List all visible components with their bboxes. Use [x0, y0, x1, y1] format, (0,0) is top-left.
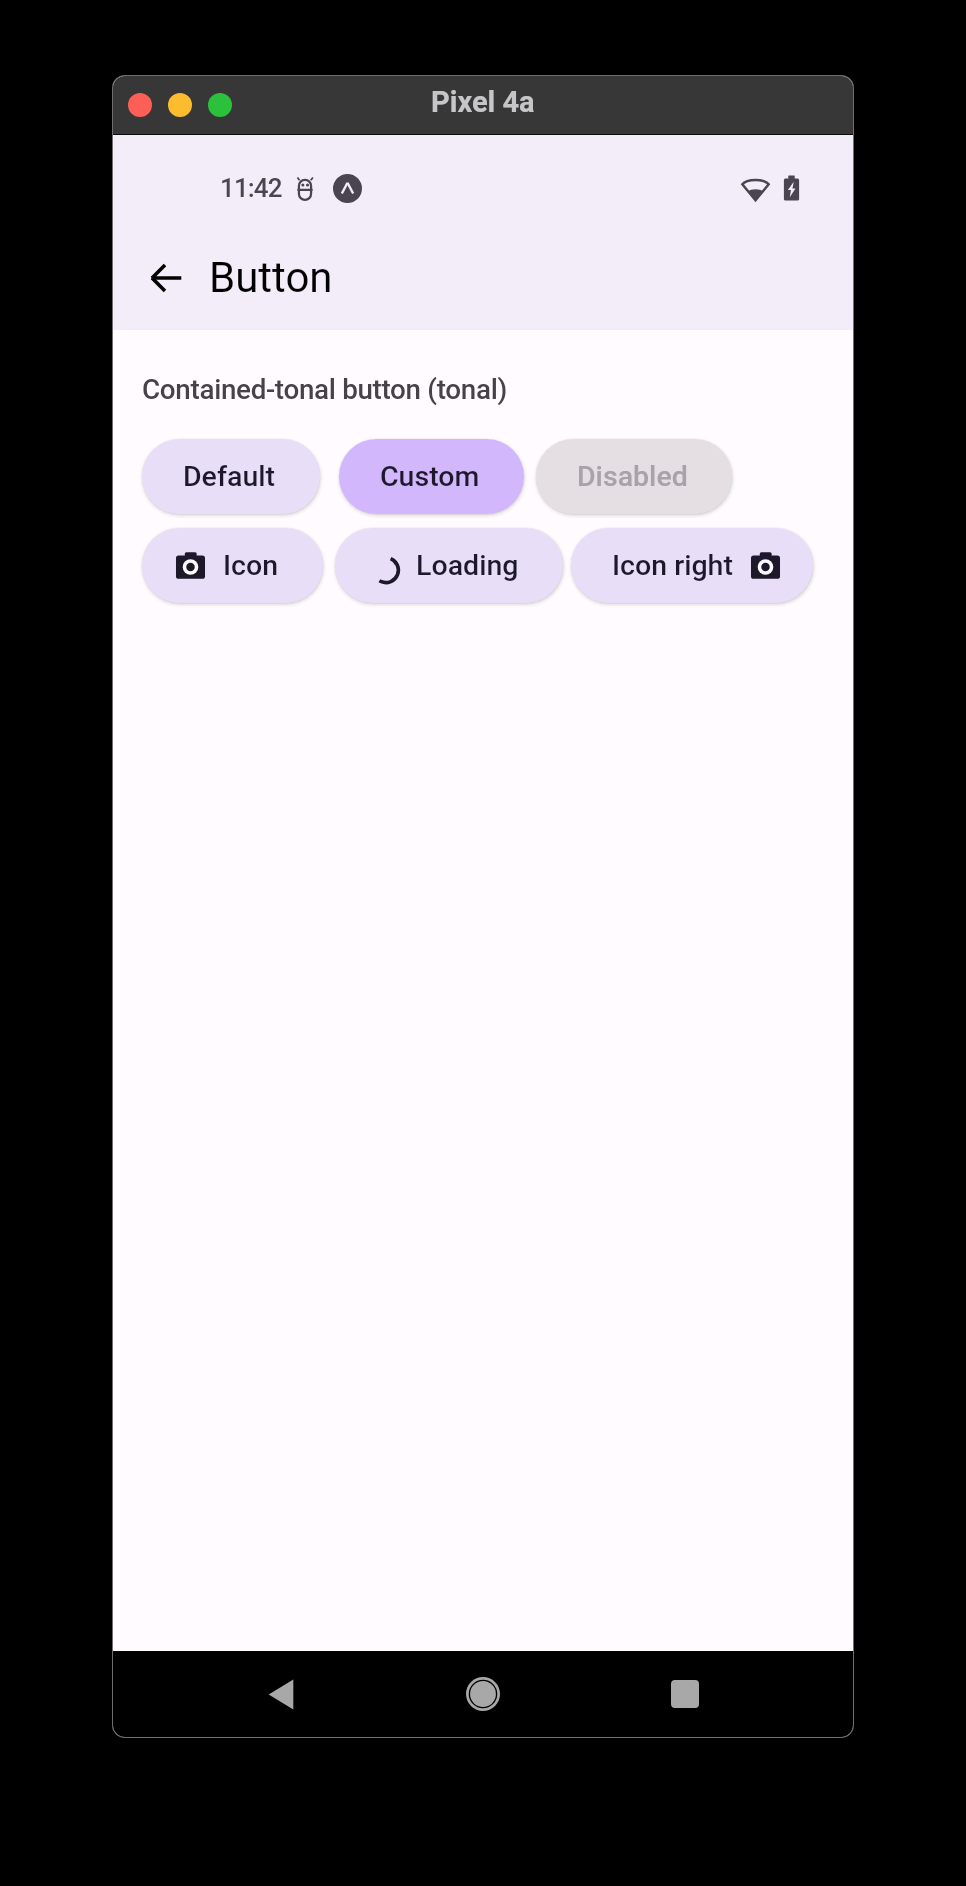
- staticText: Disabled: [577, 460, 688, 493]
- staticText: Contained-tonal button (tonal): [142, 373, 507, 406]
- button[interactable]: Default: [142, 439, 320, 514]
- staticText: Icon right: [612, 549, 733, 582]
- staticText: Icon: [223, 549, 279, 582]
- button[interactable]: Icon: [142, 528, 323, 603]
- button[interactable]: Disabled: [536, 439, 732, 514]
- staticText: Custom: [380, 460, 480, 493]
- staticText: Loading: [416, 549, 519, 582]
- button[interactable]: Back: [245, 1659, 317, 1729]
- button[interactable]: Recents: [649, 1659, 721, 1729]
- button[interactable]: Icon right: [571, 528, 813, 603]
- button[interactable]: Home: [447, 1659, 519, 1729]
- staticText: Button: [209, 253, 333, 302]
- staticText: Pixel 4a: [431, 85, 535, 119]
- button[interactable]: Custom: [339, 439, 524, 514]
- staticText: Default: [183, 460, 276, 493]
- staticText: 11:42: [220, 173, 282, 203]
- button[interactable]: Loading: [335, 528, 563, 603]
- button[interactable]: Back: [138, 250, 194, 306]
